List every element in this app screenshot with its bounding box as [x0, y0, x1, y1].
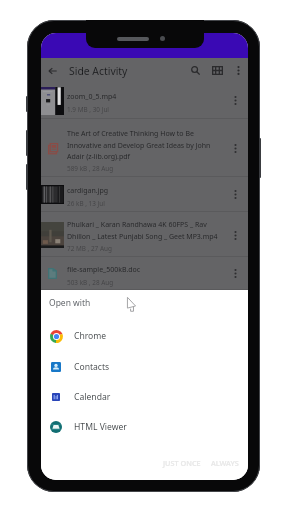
- staticText: Side Activity: [69, 64, 128, 78]
- staticText: 589 kB , 28 Aug: [67, 164, 114, 173]
- button[interactable]: More options: [226, 257, 245, 290]
- staticText: JUST ONCE: [163, 458, 201, 468]
- staticText: Chrome: [74, 330, 107, 342]
- button[interactable]: HTML Viewer: [41, 412, 248, 442]
- button[interactable]: cardigan.jpg: [41, 177, 248, 212]
- button[interactable]: Search: [186, 61, 205, 80]
- staticText: 503 kB , 28 Aug: [67, 278, 114, 287]
- button[interactable]: Phulkari _ Karan Randhawa 4K 60FPS _ Rav…: [41, 213, 248, 257]
- button[interactable]: Grid view: [208, 61, 227, 80]
- button[interactable]: Back: [43, 61, 62, 80]
- staticText: ALWAYS: [211, 458, 239, 468]
- staticText: zoom_0_5.mp4: [67, 92, 117, 102]
- button[interactable]: Chrome: [41, 321, 248, 351]
- button[interactable]: ALWAYS: [207, 454, 243, 472]
- staticText: Open with: [49, 297, 91, 309]
- button[interactable]: More options: [226, 177, 245, 212]
- staticText: 26 kB , 13 Jul: [67, 199, 105, 208]
- staticText: 1.9 MB , 30 Jul: [67, 105, 109, 114]
- button[interactable]: More options: [226, 82, 245, 119]
- staticText: Contacts: [74, 361, 110, 373]
- staticText: cardigan.jpg: [67, 186, 108, 196]
- button[interactable]: JUST ONCE: [159, 454, 205, 472]
- button[interactable]: More options: [226, 213, 245, 257]
- button[interactable]: More options: [229, 61, 248, 80]
- button[interactable]: More options: [226, 119, 245, 177]
- button[interactable]: Contacts: [41, 352, 248, 382]
- staticText: 72 MB , 27 Aug: [67, 244, 112, 253]
- button[interactable]: The Art of Creative Thinking How to Be I…: [41, 119, 248, 177]
- staticText: Calendar: [74, 391, 111, 403]
- staticText: file-sample_500kB.doc: [67, 265, 141, 275]
- button[interactable]: zoom_0_5.mp4: [41, 82, 248, 119]
- staticText: HTML Viewer: [74, 421, 127, 433]
- staticText: The Art of Creative Thinking How to Be I…: [67, 129, 220, 161]
- staticText: Phulkari _ Karan Randhawa 4K 60FPS _ Rav…: [67, 220, 220, 241]
- button[interactable]: Calendar: [41, 382, 248, 412]
- button[interactable]: file-sample_500kB.doc: [41, 257, 248, 290]
